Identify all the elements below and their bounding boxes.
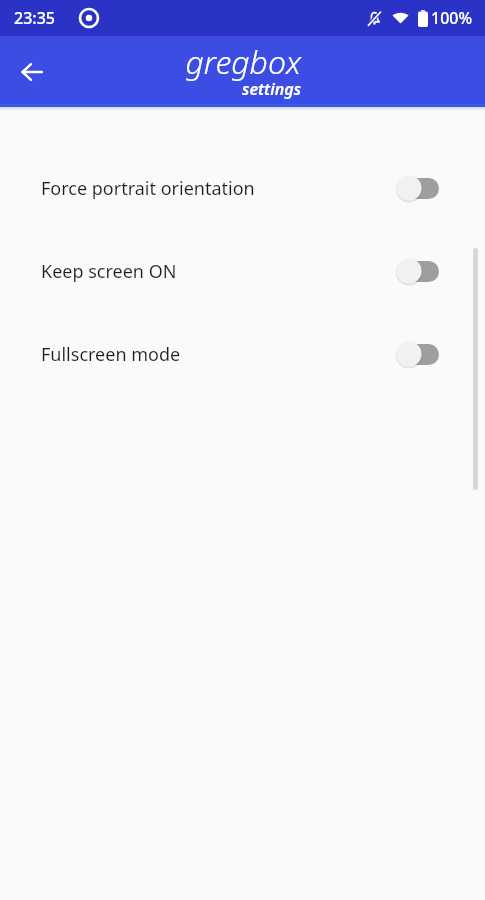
- staticText: settings: [242, 78, 301, 100]
- staticText: Force portrait orientation: [41, 176, 395, 201]
- button[interactable]: Keep screen ON: [0, 256, 485, 286]
- staticText: Keep screen ON: [41, 259, 395, 284]
- staticText: 23:35: [14, 7, 55, 29]
- button[interactable]: Fullscreen mode: [0, 339, 485, 369]
- staticText: gregbox: [185, 40, 301, 84]
- button[interactable]: Force portrait orientation: [0, 173, 485, 203]
- staticText: Fullscreen mode: [41, 342, 395, 367]
- staticText: 100%: [431, 7, 473, 29]
- button[interactable]: Back: [8, 48, 56, 96]
